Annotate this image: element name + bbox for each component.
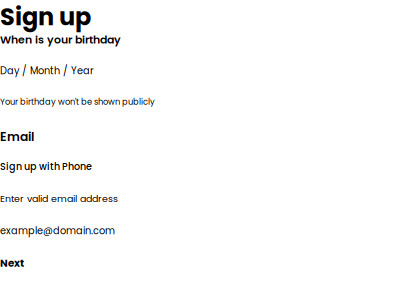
staticText: Sign up (0, 0, 91, 34)
staticText: Enter valid email address (0, 192, 118, 205)
staticText: Your birthday won't be shown publicly (0, 96, 155, 108)
staticText: Email (0, 128, 34, 145)
staticText: example@domain.com (0, 224, 115, 238)
staticText: Next (0, 256, 24, 270)
staticText: Sign up with Phone (0, 160, 92, 173)
staticText: Day / Month / Year (0, 64, 94, 78)
staticText: When is your birthday (0, 32, 121, 47)
